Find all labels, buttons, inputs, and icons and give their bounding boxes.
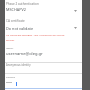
button[interactable]: Phase 2 authentication <box>5 0 82 16</box>
staticText: username@oleg.gr <box>6 51 43 57</box>
staticText: Anonymous identity <box>6 63 31 67</box>
staticText: MSCHAPV2 <box>6 7 26 12</box>
staticText: Password <box>6 76 16 79</box>
button[interactable]: Password <box>5 74 82 90</box>
staticText: No certificate specified. Your connectio… <box>6 33 67 42</box>
staticText: Do not validate <box>6 26 34 31</box>
staticText: Phase 2 authentication <box>6 2 39 6</box>
button[interactable]: Anonymous identity <box>5 62 82 73</box>
staticText: Identity <box>6 47 14 50</box>
staticText: CA certificate <box>6 19 25 23</box>
other: Phase 2 authentication dropdown <box>74 10 77 12</box>
other: CA certificate dropdown <box>74 27 77 29</box>
button[interactable]: CA certificate <box>5 16 82 32</box>
staticText: •••••• <box>6 81 12 85</box>
button[interactable]: Identity <box>5 45 82 57</box>
